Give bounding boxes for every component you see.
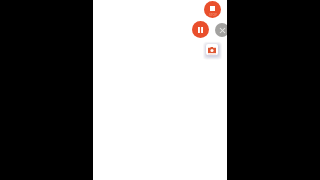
staticText: STOP	[209, 13, 217, 17]
button[interactable]: Pause recording	[192, 21, 209, 38]
staticText: SHOT	[208, 53, 216, 55]
button[interactable]: Stop recording	[204, 1, 221, 18]
button[interactable]: Take screenshot	[206, 44, 218, 55]
button[interactable]: Close	[215, 23, 227, 37]
